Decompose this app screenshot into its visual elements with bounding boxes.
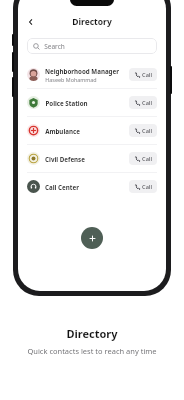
staticText: Police Station bbox=[45, 99, 88, 107]
staticText: Call bbox=[142, 183, 152, 191]
button[interactable]: Ambulance bbox=[18, 117, 166, 144]
button[interactable]: Civil Defense bbox=[18, 145, 166, 172]
staticText: Call bbox=[142, 127, 152, 135]
staticText: Call Center bbox=[45, 183, 79, 191]
button[interactable]: Call bbox=[129, 124, 157, 137]
staticText: Neighborhood Manager bbox=[45, 67, 119, 75]
button[interactable]: Call bbox=[129, 180, 157, 193]
button[interactable]: Neighborhood Manager bbox=[18, 61, 166, 88]
staticText: Civil Defense bbox=[45, 155, 85, 163]
button[interactable]: Call Center bbox=[18, 173, 166, 200]
staticText: Quick contacts lest to reach any time bbox=[27, 346, 157, 356]
button[interactable]: Add contact bbox=[81, 227, 103, 249]
button[interactable]: Back bbox=[24, 15, 38, 29]
staticText: Haseeb Mohammad bbox=[45, 76, 97, 83]
button[interactable]: Call bbox=[129, 68, 157, 81]
button[interactable]: Search bbox=[27, 38, 157, 54]
staticText: Directory bbox=[72, 16, 112, 28]
staticText: Call bbox=[142, 71, 152, 79]
button[interactable]: Call bbox=[129, 96, 157, 109]
staticText: Search bbox=[44, 42, 65, 51]
staticText: Ambulance bbox=[45, 127, 80, 135]
button[interactable]: Call bbox=[129, 152, 157, 165]
button[interactable]: Police Station bbox=[18, 89, 166, 116]
staticText: Directory bbox=[66, 326, 118, 341]
staticText: Call bbox=[142, 99, 152, 107]
staticText: Call bbox=[142, 155, 152, 163]
